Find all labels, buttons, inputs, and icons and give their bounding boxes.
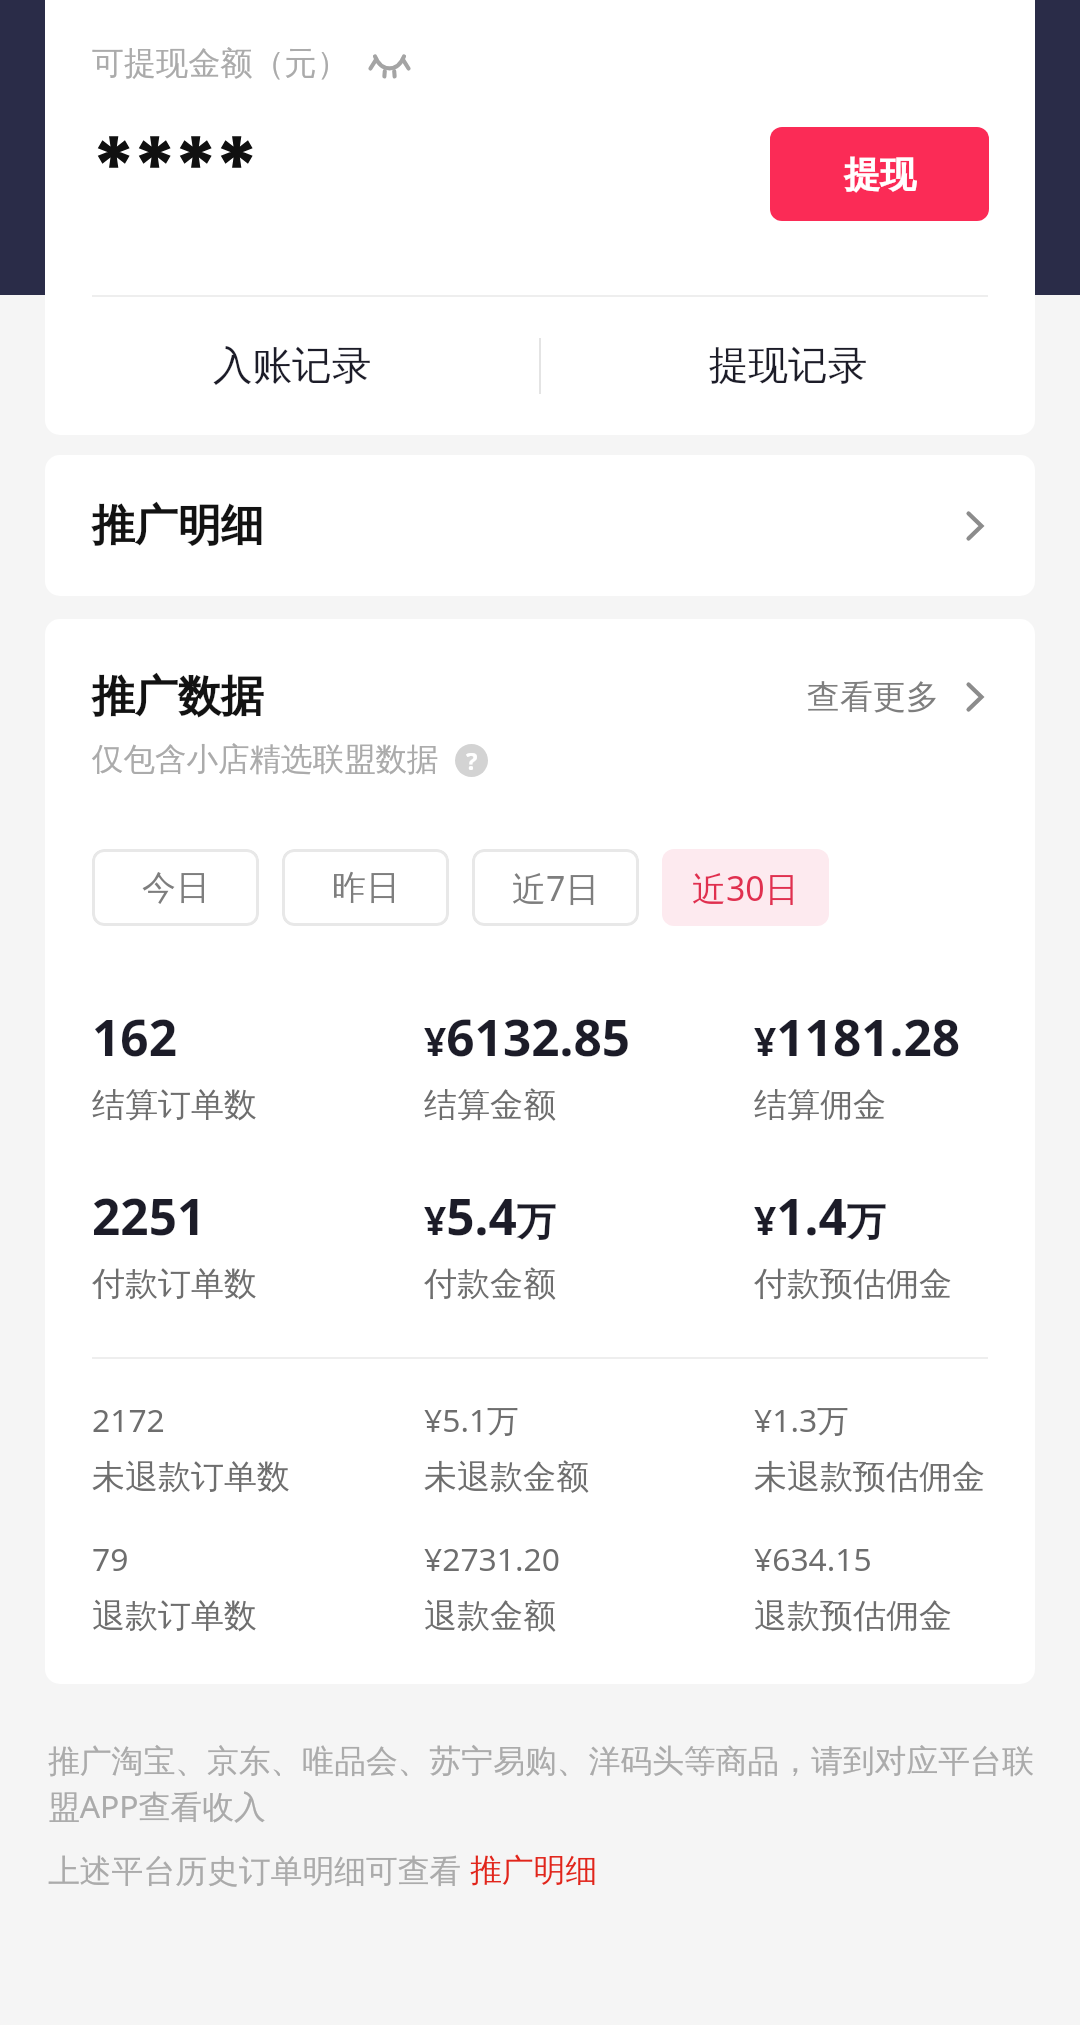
staticText: 2251	[92, 1182, 206, 1249]
staticText: 推广淘宝、京东、唯品会、苏宁易购、洋码头等商品，请到对应平台联盟APP查看收入	[48, 1741, 1035, 1827]
staticText: 未退款订单数	[92, 1456, 290, 1498]
staticText: 2172	[92, 1398, 165, 1441]
staticText: ¥5.4万	[424, 1182, 556, 1249]
staticText: ¥6132.85	[424, 1003, 631, 1070]
button[interactable]: 近7日	[472, 849, 639, 926]
button[interactable]: Show balance	[362, 39, 416, 87]
staticText: 近30日	[692, 865, 799, 911]
staticText: ¥2731.20	[424, 1537, 560, 1580]
staticText: 未退款金额	[424, 1456, 589, 1498]
staticText: 推广数据	[92, 670, 807, 724]
staticText: 结算订单数	[92, 1084, 257, 1126]
button[interactable]: 推广明细	[470, 1850, 598, 1890]
staticText: ¥1.3万	[754, 1398, 849, 1441]
staticText: ¥1181.28	[754, 1003, 961, 1070]
staticText: 查看更多	[807, 676, 939, 718]
staticText: 入账记录	[213, 341, 372, 391]
staticText: 昨日	[332, 866, 400, 909]
staticText: 退款订单数	[92, 1595, 257, 1637]
staticText: 79	[92, 1537, 129, 1580]
button[interactable]: 入账记录	[45, 297, 539, 435]
staticText: 退款预估佣金	[754, 1595, 952, 1637]
staticText: 付款预估佣金	[754, 1263, 952, 1305]
staticText: ¥634.15	[754, 1537, 872, 1580]
button[interactable]: 近30日	[662, 849, 829, 926]
staticText: 付款金额	[424, 1263, 556, 1305]
staticText: 今日	[142, 866, 210, 909]
staticText: 结算金额	[424, 1084, 556, 1126]
button[interactable]: 提现记录	[541, 297, 1035, 435]
button[interactable]: 查看更多	[807, 676, 988, 718]
staticText: 可提现金额（元）	[92, 43, 349, 83]
staticText: ¥1.4万	[754, 1182, 886, 1249]
staticText: 退款金额	[424, 1595, 556, 1637]
staticText: 推广明细	[92, 499, 966, 553]
button[interactable]: 提现	[770, 127, 989, 221]
staticText: 162	[92, 1003, 177, 1070]
staticText: 仅包含小店精选联盟数据	[92, 740, 439, 780]
staticText: 提现记录	[709, 341, 868, 391]
staticText: 上述平台历史订单明细可查看	[48, 1848, 470, 1891]
staticText: ¥5.1万	[424, 1398, 519, 1441]
staticText: 近7日	[512, 865, 600, 911]
button[interactable]: 昨日	[282, 849, 449, 926]
staticText: 未退款预估佣金	[754, 1456, 985, 1498]
button[interactable]: 推广明细	[45, 455, 1035, 596]
staticText: 结算佣金	[754, 1084, 886, 1126]
staticText: 付款订单数	[92, 1263, 257, 1305]
staticText: 提现	[844, 152, 916, 197]
staticText: ?	[466, 744, 478, 777]
button[interactable]: 今日	[92, 849, 259, 926]
